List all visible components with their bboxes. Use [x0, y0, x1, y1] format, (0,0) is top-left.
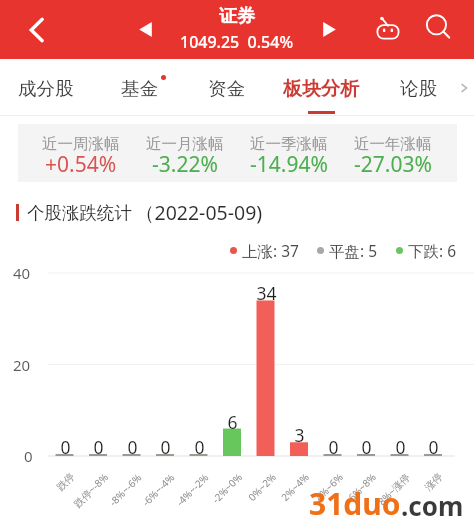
button[interactable]: 平盘: 5: [317, 240, 378, 261]
staticText: -2%~0%: [209, 470, 245, 506]
staticText: 31duo: [309, 483, 401, 524]
staticText: 3: [294, 423, 305, 447]
staticText: 0: [194, 435, 205, 459]
staticText: 板块分析: [283, 77, 359, 101]
button[interactable]: 论股: [380, 59, 456, 116]
button[interactable]: Next sector: [314, 14, 344, 44]
button[interactable]: 上涨: 37: [230, 240, 299, 261]
button[interactable]: 板块分析: [273, 59, 369, 116]
staticText: 2%~4%: [278, 470, 312, 504]
button[interactable]: Search: [421, 10, 457, 46]
button[interactable]: 成分股: [8, 59, 84, 116]
staticText: 0: [160, 435, 171, 459]
staticText: 4%~6%: [312, 470, 346, 504]
staticText: -6%~-4%: [139, 470, 178, 509]
staticText: 论股: [400, 77, 437, 100]
staticText: 40: [13, 263, 31, 283]
staticText: 0: [395, 435, 406, 459]
staticText: 0: [24, 446, 33, 466]
button[interactable]: More tabs: [453, 59, 474, 116]
staticText: 8%~涨停: [375, 470, 413, 508]
staticText: 跌停: [54, 470, 77, 493]
staticText: 6: [227, 410, 238, 434]
staticText: 0: [127, 435, 138, 459]
staticText: -27.03%: [354, 150, 432, 178]
staticText: -14.94%: [250, 150, 328, 178]
button[interactable]: 近一月涨幅: [133, 124, 237, 182]
button[interactable]: Previous sector: [130, 14, 160, 44]
staticText: （2022-05-09): [135, 199, 263, 226]
staticText: 34: [256, 281, 277, 305]
staticText: 近一周涨幅: [42, 134, 120, 154]
button[interactable]: 近一季涨幅: [237, 124, 341, 182]
staticText: 证券: [219, 5, 255, 28]
staticText: 下跌: 6: [408, 240, 457, 261]
staticText: 近一季涨幅: [250, 134, 328, 154]
staticText: -3.22%: [152, 150, 218, 178]
staticText: 6%~8%: [345, 470, 379, 504]
staticText: +0.54%: [45, 150, 117, 178]
staticText: 成分股: [18, 77, 74, 100]
button[interactable]: 近一年涨幅: [341, 124, 445, 182]
button[interactable]: 下跌: 6: [396, 240, 457, 261]
staticText: 近一年涨幅: [354, 134, 432, 154]
staticText: 跌停~-8%: [71, 470, 111, 510]
staticText: 20: [13, 355, 31, 375]
staticText: 1049.25 0.54%: [180, 31, 294, 53]
button[interactable]: 近一周涨幅: [28, 124, 133, 182]
staticText: -8%~-6%: [106, 470, 145, 509]
staticText: 0: [428, 435, 439, 459]
staticText: -4%~-2%: [173, 470, 212, 509]
staticText: 个股涨跌统计: [27, 202, 132, 224]
button[interactable]: 基金: [101, 59, 177, 116]
staticText: 0%~2%: [245, 470, 279, 504]
button[interactable]: AI assistant: [370, 11, 406, 47]
staticText: 上涨: 37: [242, 240, 299, 261]
staticText: 基金: [121, 77, 158, 100]
staticText: 0: [93, 435, 104, 459]
staticText: 0: [361, 435, 372, 459]
staticText: 平盘: 5: [329, 240, 378, 261]
button[interactable]: 资金: [188, 59, 264, 116]
staticText: 涨停: [422, 470, 445, 493]
staticText: 资金: [208, 77, 245, 100]
staticText: 0: [60, 435, 71, 459]
staticText: 近一月涨幅: [146, 134, 224, 154]
staticText: 0: [328, 435, 339, 459]
button[interactable]: Back: [18, 11, 56, 49]
staticText: .com: [401, 488, 464, 523]
